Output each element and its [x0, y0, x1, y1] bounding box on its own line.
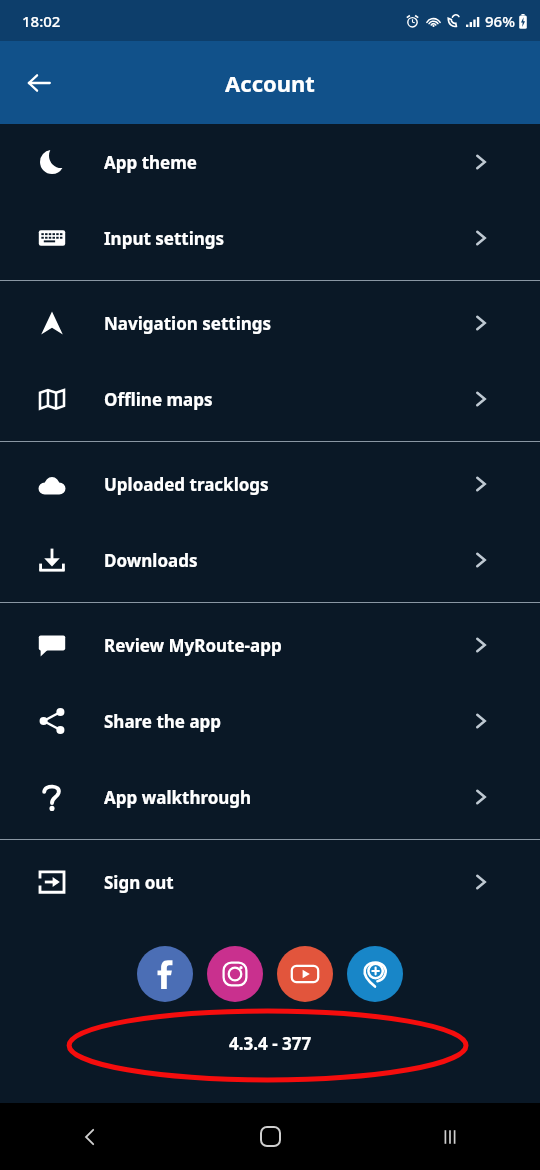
staticText: Review MyRoute-app [104, 634, 282, 657]
button[interactable]: App theme [0, 124, 540, 200]
button[interactable]: Downloads [0, 522, 540, 598]
button[interactable]: Recent apps [360, 1103, 540, 1170]
button[interactable]: Uploaded tracklogs [0, 446, 540, 522]
staticText: Navigation settings [104, 312, 272, 335]
staticText: App walkthrough [104, 786, 252, 809]
button[interactable]: Offline maps [0, 361, 540, 437]
button[interactable]: Home [180, 1103, 360, 1170]
button[interactable]: Input settings [0, 200, 540, 276]
button[interactable]: Review MyRoute-app [0, 607, 540, 683]
button[interactable]: Share the app [0, 683, 540, 759]
button[interactable]: Facebook [137, 946, 193, 1002]
button[interactable]: MyRoute-app [347, 946, 403, 1002]
button[interactable]: Back [16, 60, 62, 106]
staticText: Account [225, 68, 315, 98]
button[interactable]: Sign out [0, 844, 540, 920]
button[interactable]: App walkthrough [0, 759, 540, 835]
button[interactable]: Instagram [207, 946, 263, 1002]
staticText: App theme [104, 151, 197, 174]
button[interactable]: YouTube [277, 946, 333, 1002]
staticText: Input settings [104, 227, 225, 250]
button[interactable]: Back [0, 1103, 180, 1170]
staticText: 18:02 [22, 11, 61, 31]
staticText: Offline maps [104, 388, 213, 411]
staticText: Share the app [104, 710, 222, 733]
staticText: Sign out [104, 871, 174, 894]
button[interactable]: Navigation settings [0, 285, 540, 361]
staticText: 96% [485, 11, 515, 31]
staticText: Uploaded tracklogs [104, 473, 269, 496]
staticText: Downloads [104, 549, 198, 572]
staticText: 4.3.4 - 377 [229, 1032, 312, 1055]
